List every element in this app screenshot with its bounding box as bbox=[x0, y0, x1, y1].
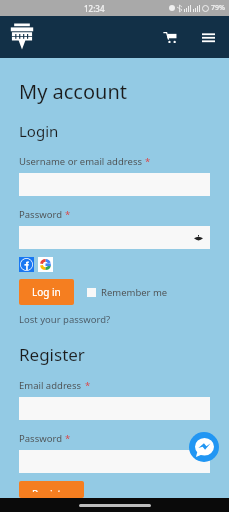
staticText: 12:34 bbox=[84, 3, 105, 14]
staticText: Login bbox=[19, 121, 59, 141]
staticText: Password bbox=[19, 432, 62, 445]
staticText: * bbox=[145, 155, 151, 168]
button[interactable]: Log in with Facebook bbox=[19, 257, 34, 272]
staticText: Email address bbox=[19, 379, 82, 392]
staticText: Register bbox=[19, 343, 85, 366]
button[interactable]: Lost your password? bbox=[19, 313, 111, 326]
staticText: Log in bbox=[32, 285, 61, 299]
staticText: * bbox=[85, 379, 91, 392]
staticText: Register bbox=[32, 487, 71, 492]
button[interactable]: Menu bbox=[197, 26, 219, 48]
button[interactable]: Cart bbox=[159, 26, 181, 48]
staticText: Password bbox=[19, 208, 62, 221]
staticText: Remember me bbox=[101, 286, 168, 299]
staticText: 79% bbox=[211, 3, 225, 13]
button[interactable]: Log in bbox=[19, 279, 74, 305]
button[interactable] bbox=[19, 450, 210, 473]
staticText: Username or email address bbox=[19, 155, 142, 168]
button[interactable]: Show password bbox=[19, 226, 210, 249]
staticText: My account bbox=[19, 78, 127, 105]
staticText: * bbox=[65, 208, 71, 221]
other: Show password bbox=[194, 235, 203, 241]
button[interactable]: Chat on Messenger bbox=[189, 432, 219, 462]
staticText: * bbox=[65, 432, 71, 445]
button[interactable]: Register bbox=[19, 481, 84, 498]
button[interactable]: Remember me bbox=[87, 286, 168, 299]
button[interactable]: Log in with Google bbox=[38, 257, 53, 272]
